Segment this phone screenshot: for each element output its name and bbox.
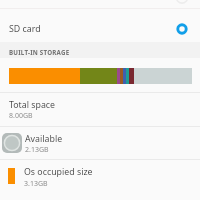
staticText: 8.00GB — [9, 111, 33, 121]
staticText: Available — [25, 133, 63, 145]
other: Available storage — [2, 133, 22, 153]
staticText: SD card — [9, 23, 174, 35]
button[interactable]: SD card — [0, 9, 200, 42]
button[interactable]: Available storage — [0, 127, 200, 159]
staticText: BUILT-IN STORAGE — [9, 48, 70, 56]
staticText: 2.13GB — [25, 145, 49, 155]
other: SD card selected — [174, 21, 190, 37]
staticText: Os occupied size — [24, 166, 93, 178]
button[interactable]: Total space — [0, 93, 200, 126]
staticText: Total space — [9, 99, 56, 111]
staticText: 3.13GB — [24, 179, 48, 189]
button[interactable]: Os occupied size — [0, 160, 200, 192]
